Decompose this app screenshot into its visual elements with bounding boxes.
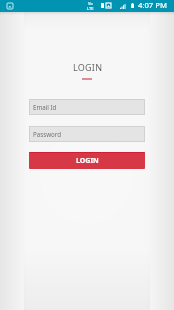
- other: Mobile data: [106, 3, 111, 8]
- other: Screenshot captured: [7, 3, 13, 9]
- staticText: 4:07 PM: [138, 0, 167, 10]
- button[interactable]: Email Id: [29, 99, 145, 115]
- staticText: Password: [33, 130, 61, 138]
- button[interactable]: Password: [29, 126, 145, 142]
- button[interactable]: LOGIN: [29, 152, 145, 169]
- staticText: LTE: [87, 6, 94, 11]
- staticText: LOGIN: [76, 156, 99, 166]
- other: VoLTE: [87, 1, 94, 11]
- staticText: LOGIN: [73, 61, 103, 73]
- other: Signal strength: [120, 4, 126, 9]
- staticText: Email Id: [33, 103, 57, 111]
- other: Battery: [131, 3, 134, 8]
- staticText: Vo: [88, 1, 93, 6]
